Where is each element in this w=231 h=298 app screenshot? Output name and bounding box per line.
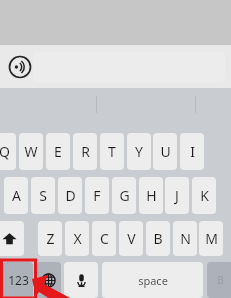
button[interactable]: Voice typing bbox=[64, 262, 98, 298]
staticText: B bbox=[217, 273, 224, 287]
staticText: X bbox=[73, 229, 82, 248]
staticText: Z bbox=[46, 229, 55, 248]
button[interactable]: K bbox=[192, 177, 216, 214]
button[interactable]: H bbox=[139, 177, 163, 214]
button[interactable]: M bbox=[199, 221, 223, 256]
staticText: N bbox=[180, 229, 191, 248]
button[interactable]: W bbox=[19, 133, 43, 170]
staticText: S bbox=[39, 186, 47, 205]
button[interactable]: R bbox=[73, 133, 97, 170]
staticText: M bbox=[205, 229, 218, 248]
staticText: I bbox=[190, 142, 195, 161]
button[interactable]: Y bbox=[127, 133, 151, 170]
button[interactable]: T bbox=[100, 133, 124, 170]
staticText: D bbox=[65, 186, 76, 205]
staticText: T bbox=[108, 142, 116, 161]
button[interactable]: B bbox=[146, 221, 170, 256]
button[interactable]: N bbox=[173, 221, 197, 256]
staticText: U bbox=[160, 142, 171, 161]
staticText: W bbox=[24, 142, 38, 161]
button[interactable]: Z bbox=[38, 221, 62, 256]
staticText: B bbox=[153, 229, 163, 248]
staticText: V bbox=[127, 229, 136, 248]
staticText: space bbox=[138, 273, 168, 288]
staticText: C bbox=[100, 229, 109, 248]
button[interactable]: U bbox=[153, 133, 177, 170]
staticText: E bbox=[54, 142, 62, 161]
button[interactable]: Shift bbox=[0, 221, 24, 256]
staticText: Q bbox=[0, 142, 10, 161]
button[interactable]: B bbox=[207, 262, 231, 298]
button[interactable]: 123 bbox=[3, 262, 33, 298]
staticText: F bbox=[93, 186, 101, 205]
button[interactable]: Accessibility sound bbox=[6, 53, 33, 80]
button[interactable]: F bbox=[85, 177, 109, 214]
staticText: K bbox=[200, 186, 209, 205]
button[interactable]: D bbox=[58, 177, 82, 214]
staticText: 123 bbox=[8, 272, 29, 288]
button[interactable]: J bbox=[165, 177, 189, 214]
button[interactable]: Switch language bbox=[36, 262, 61, 298]
staticText: G bbox=[119, 186, 130, 205]
staticText: A bbox=[12, 186, 21, 205]
button[interactable]: space bbox=[102, 262, 203, 298]
button[interactable]: V bbox=[119, 221, 143, 256]
button[interactable]: G bbox=[112, 177, 136, 214]
button[interactable]: C bbox=[92, 221, 116, 256]
staticText: H bbox=[146, 186, 157, 205]
button[interactable]: Q bbox=[0, 133, 16, 170]
staticText: R bbox=[81, 142, 90, 161]
button[interactable]: E bbox=[46, 133, 70, 170]
button[interactable]: S bbox=[31, 177, 55, 214]
staticText: Y bbox=[135, 142, 143, 161]
button[interactable]: I bbox=[180, 133, 204, 170]
staticText: J bbox=[175, 186, 179, 205]
button[interactable]: A bbox=[4, 177, 28, 214]
button[interactable]: X bbox=[65, 221, 89, 256]
